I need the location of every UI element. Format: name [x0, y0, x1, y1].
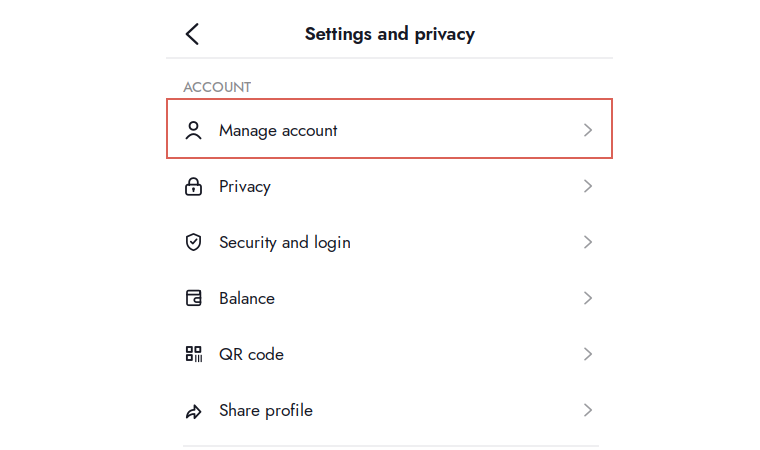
button[interactable]: QR code: [166, 326, 613, 382]
staticText: Manage account: [219, 117, 337, 142]
button[interactable]: Manage account: [166, 102, 613, 158]
staticText: Settings and privacy: [304, 20, 474, 47]
button[interactable]: Share profile: [166, 382, 613, 438]
staticText: Balance: [219, 285, 275, 310]
staticText: QR code: [219, 341, 284, 366]
button[interactable]: Security and login: [166, 214, 613, 270]
button[interactable]: Back: [174, 16, 210, 52]
staticText: Privacy: [219, 173, 271, 198]
button[interactable]: Balance: [166, 270, 613, 326]
button[interactable]: Privacy: [166, 158, 613, 214]
staticText: Share profile: [219, 397, 313, 422]
staticText: Security and login: [219, 229, 351, 254]
staticText: ACCOUNT: [183, 76, 251, 98]
